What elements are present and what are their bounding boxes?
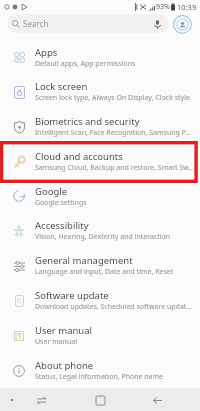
button[interactable]: Biometrics and security — [0, 109, 200, 144]
button[interactable]: Voice search — [149, 16, 165, 32]
staticText: Apps — [35, 46, 58, 59]
button[interactable]: Google — [0, 179, 200, 213]
button[interactable]: User manual — [0, 318, 200, 353]
staticText: User manual — [35, 324, 92, 337]
staticText: Google — [35, 185, 68, 198]
button[interactable]: General management — [0, 248, 200, 283]
button[interactable]: Lock screen — [0, 74, 200, 109]
button[interactable]: About phone — [0, 353, 200, 388]
staticText: User manual — [35, 337, 77, 347]
button[interactable]: Recents — [33, 392, 49, 408]
button[interactable]: Search — [7, 14, 169, 33]
button[interactable]: Accessibility — [0, 213, 200, 248]
staticText: Lock screen — [35, 80, 88, 93]
staticText: 93% — [156, 2, 170, 12]
button[interactable]: Home — [92, 392, 108, 408]
staticText: Default apps, App permissions — [35, 59, 136, 69]
staticText: Status, Legal information, Phone name — [35, 372, 164, 382]
button[interactable]: Cloud and accounts — [0, 144, 200, 179]
staticText: About phone — [35, 359, 94, 372]
staticText: Cloud and accounts — [35, 150, 123, 163]
button[interactable]: Apps — [0, 40, 200, 74]
staticText: General management — [35, 254, 133, 267]
staticText: 10:39 — [177, 2, 197, 12]
button[interactable]: Account — [172, 14, 192, 34]
button[interactable]: Software update — [0, 283, 200, 318]
staticText: Accessibility — [35, 219, 89, 232]
staticText: Intelligent Scan, Face Recognition, Sams… — [35, 128, 191, 138]
button[interactable]: Back — [149, 392, 165, 408]
staticText: Download updates, Scheduled software upd… — [35, 302, 195, 312]
staticText: Software update — [35, 289, 109, 302]
staticText: Language and input, Date and time, Reset — [35, 267, 174, 277]
staticText: Biometrics and security — [35, 115, 140, 128]
staticText: Search — [23, 18, 49, 29]
staticText: Samsung Cloud, Backup and restore, Smart… — [35, 163, 195, 173]
staticText: Google settings — [35, 198, 87, 208]
staticText: Screen lock type, Always On Display, Clo… — [35, 93, 190, 103]
staticText: Vision, Hearing, Dexterity and interacti… — [35, 232, 171, 242]
